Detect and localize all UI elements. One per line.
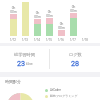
button[interactable]: AtCoder xyxy=(45,88,61,92)
staticText: 時間配分 xyxy=(5,79,21,84)
staticText: 1/13 xyxy=(22,38,28,41)
staticText: 23 xyxy=(17,59,26,67)
staticText: 1/12 xyxy=(10,38,16,41)
staticText: 0h 00m xyxy=(34,11,41,19)
staticText: 1/16 xyxy=(58,38,64,41)
staticText: 1/14 xyxy=(34,38,40,41)
staticText: 0h 00m xyxy=(46,10,53,18)
staticText: AtCoder xyxy=(50,88,61,92)
staticText: 総学習時間 xyxy=(14,52,35,57)
staticText: 時間 xyxy=(26,62,33,66)
staticText: 1/18 xyxy=(82,38,88,41)
staticText: 1/15 xyxy=(46,38,52,41)
button[interactable]: 総学習時間 xyxy=(0,46,49,72)
staticText: 1/17 xyxy=(70,38,76,41)
button[interactable]: ログ数 xyxy=(50,46,100,72)
button[interactable]: 競技プログラミング xyxy=(45,94,78,98)
staticText: ログ数 xyxy=(69,52,82,57)
staticText: 0h 00m xyxy=(10,6,17,14)
staticText: 0h 00m xyxy=(58,22,65,30)
staticText: 0h 00m xyxy=(70,5,77,13)
staticText: 28 xyxy=(71,59,80,67)
staticText: 競技プログラミング xyxy=(50,94,78,98)
